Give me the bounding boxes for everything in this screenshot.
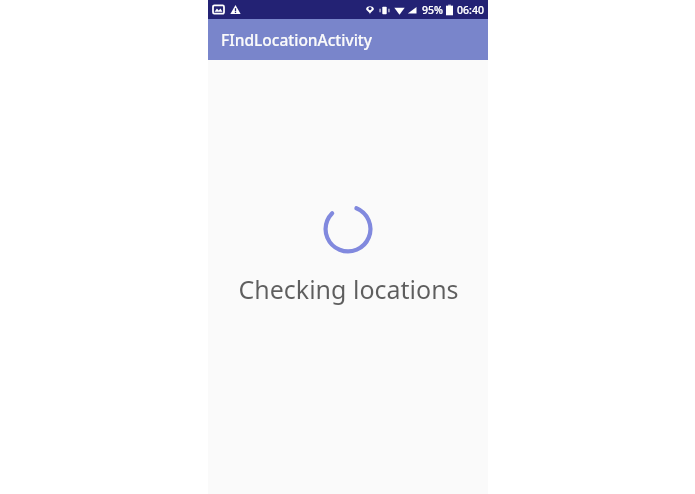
- button[interactable]: FIndLocationActivity: [208, 19, 488, 60]
- staticText: FIndLocationActivity: [221, 29, 372, 50]
- staticText: 95%: [422, 3, 443, 17]
- staticText: Checking locations: [238, 272, 459, 306]
- other: Loading: [322, 203, 374, 255]
- staticText: 06:40: [457, 3, 484, 17]
